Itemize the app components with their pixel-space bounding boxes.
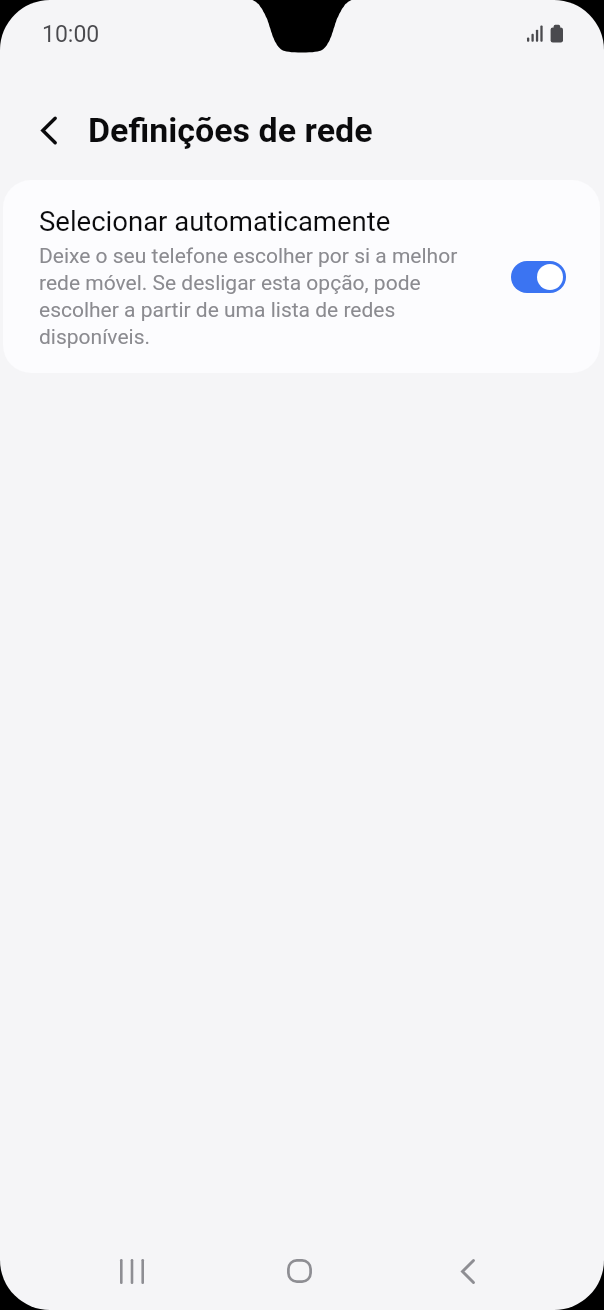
- staticText: 10:00: [42, 21, 100, 48]
- staticText: Deixe o seu telefone escolher por si a m…: [39, 244, 469, 349]
- button[interactable]: Recent apps: [87, 1242, 176, 1300]
- button[interactable]: Selecionar automaticamente: [511, 261, 566, 293]
- staticText: Selecionar automaticamente: [39, 205, 391, 237]
- button[interactable]: Back: [423, 1242, 512, 1300]
- staticText: Definições de rede: [88, 110, 373, 150]
- button[interactable]: Selecionar automaticamente: [3, 180, 600, 373]
- button[interactable]: Back: [25, 106, 73, 154]
- button[interactable]: Home: [255, 1242, 344, 1300]
